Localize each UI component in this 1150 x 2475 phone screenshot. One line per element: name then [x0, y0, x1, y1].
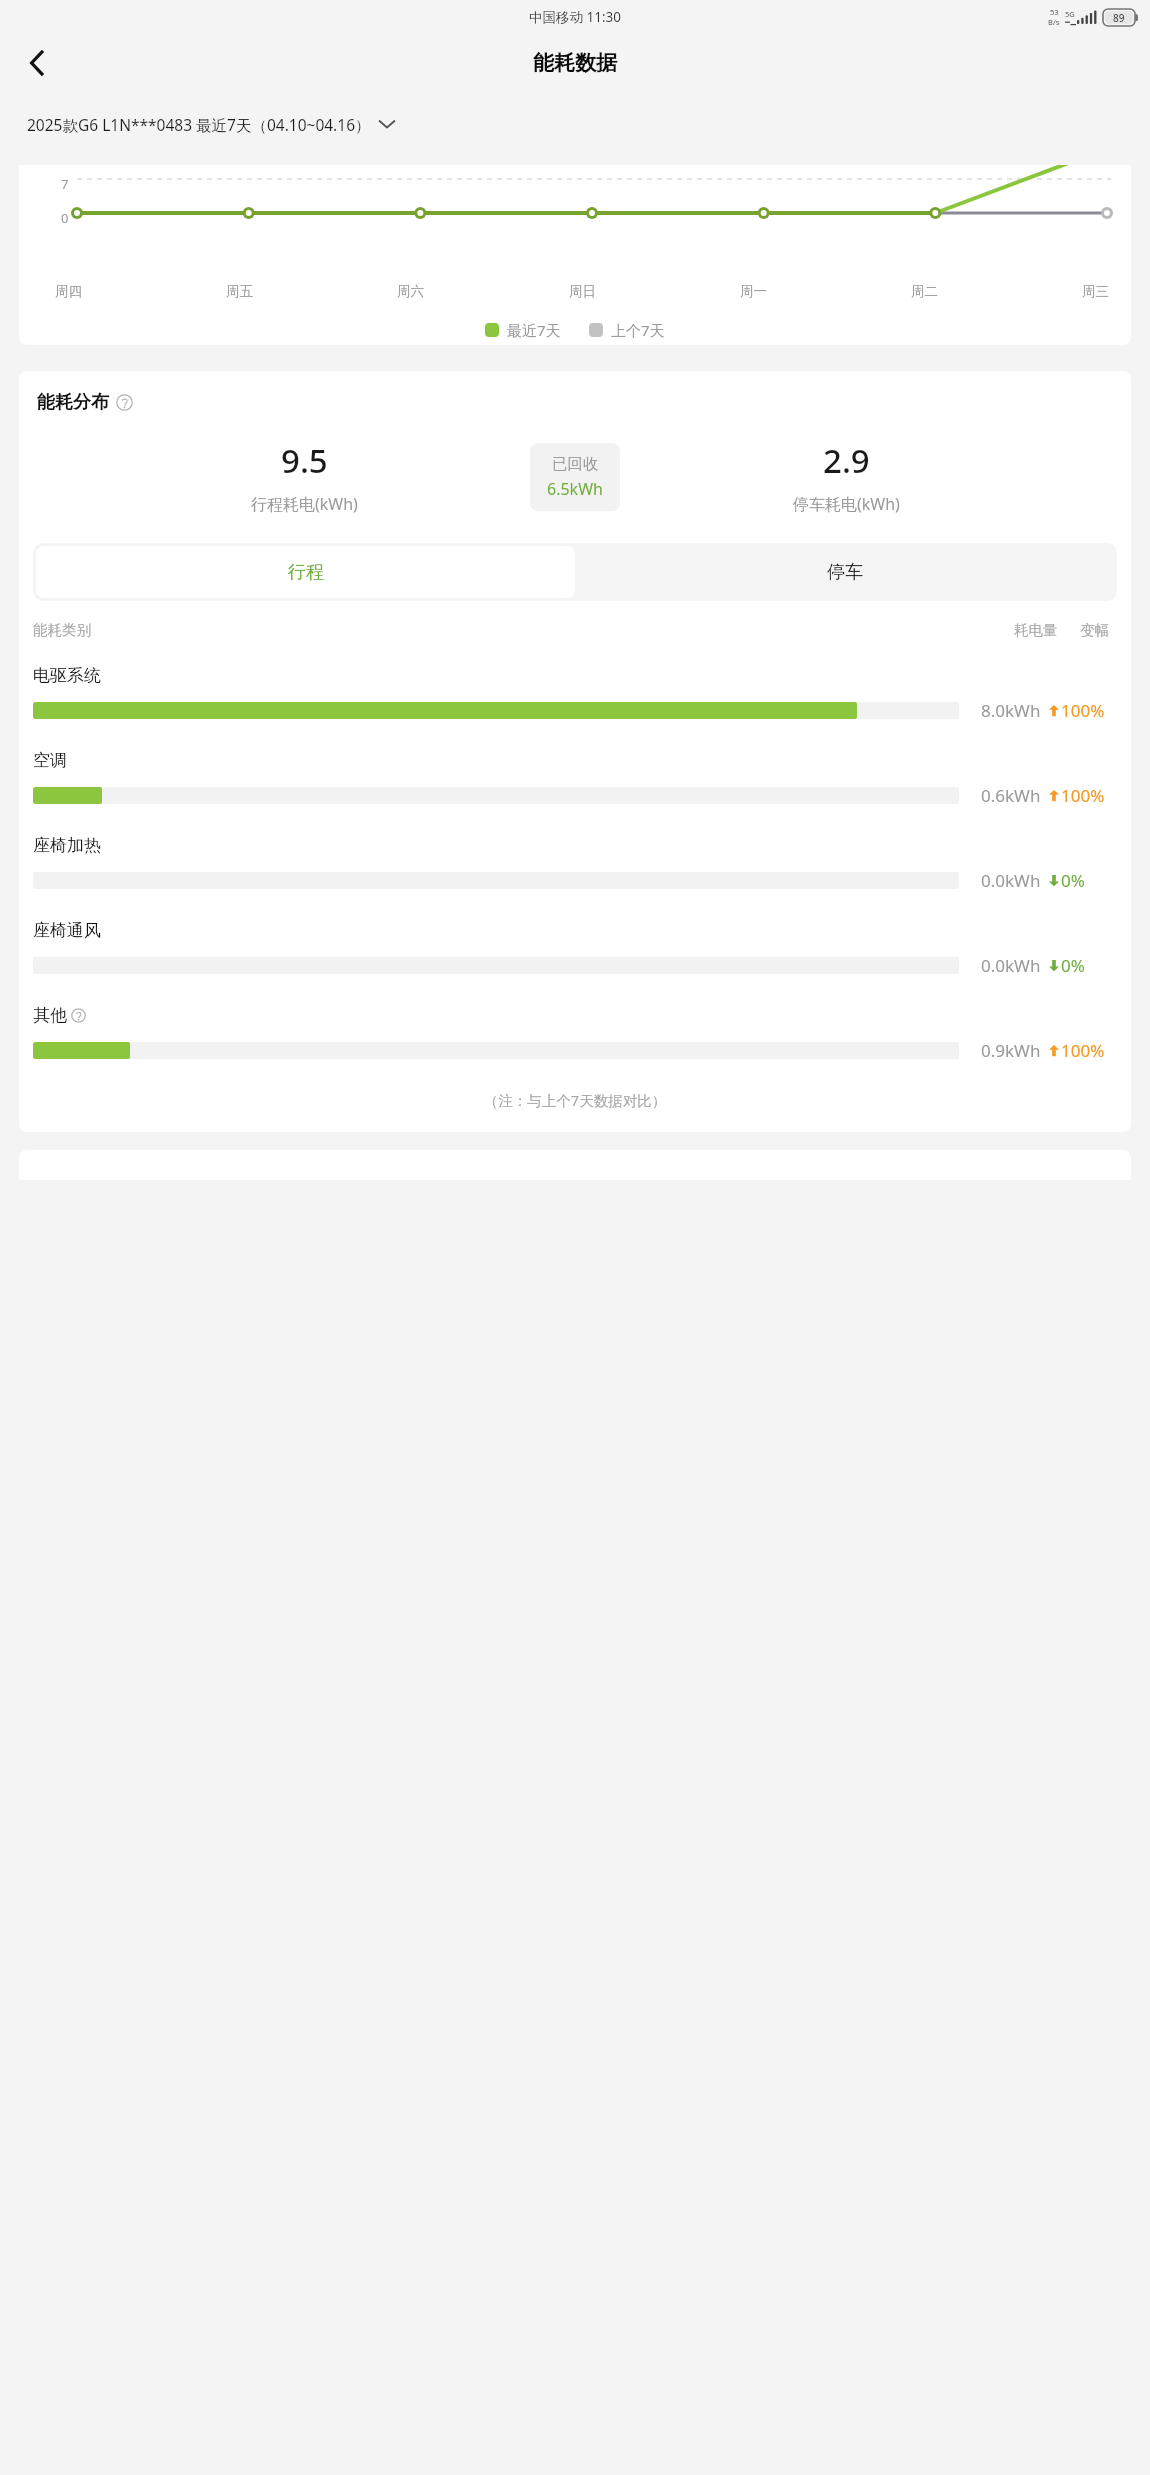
button[interactable]: 2025款G6 L1N***0483 最近7天（04.10~04.16） — [0, 93, 1150, 155]
staticText: 能耗数据 — [533, 50, 617, 76]
button[interactable]: 电驱系统 — [33, 651, 1117, 736]
staticText: 周四 — [55, 283, 82, 300]
staticText: 座椅加热 — [33, 835, 101, 856]
staticText: 行程 — [288, 561, 324, 584]
button[interactable]: 说明 — [116, 394, 133, 411]
staticText: 已回收 — [552, 454, 599, 474]
button[interactable]: 其他 — [33, 991, 1117, 1076]
staticText: 能耗类别 — [33, 621, 91, 639]
button[interactable]: 停车 — [575, 546, 1114, 598]
staticText: 0.0kWh — [981, 869, 1041, 892]
button[interactable]: Back — [14, 39, 62, 87]
staticText: 9.5 — [281, 438, 328, 483]
staticText: 2025款G6 L1N***0483 最近7天（04.10~04.16） — [27, 114, 371, 135]
staticText: 周一 — [740, 283, 767, 300]
staticText: 0 — [61, 209, 69, 227]
staticText: 空调 — [33, 750, 67, 771]
staticText: 最近7天 — [507, 320, 561, 340]
staticText: 89 — [1113, 11, 1125, 25]
staticText: 电驱系统 — [33, 665, 101, 686]
staticText: 0.9kWh — [981, 1039, 1041, 1062]
button[interactable]: 行程 — [36, 546, 575, 598]
staticText: 周六 — [397, 283, 424, 300]
staticText: 0% — [1061, 954, 1085, 977]
staticText: 座椅通风 — [33, 920, 101, 941]
staticText: （注：与上个7天数据对比） — [33, 1090, 1117, 1110]
button[interactable]: 座椅加热 — [33, 821, 1117, 906]
staticText: 2.9 — [823, 438, 870, 483]
staticText: 0% — [1061, 869, 1085, 892]
staticText: 6.5kWh — [547, 478, 603, 500]
staticText: 周三 — [1082, 283, 1109, 300]
staticText: 行程耗电(kWh) — [251, 493, 358, 515]
staticText: 中国移动 11:30 — [529, 8, 622, 26]
button[interactable]: 空调 — [33, 736, 1117, 821]
staticText: 8.0kWh — [981, 699, 1041, 722]
staticText: 0.0kWh — [981, 954, 1041, 977]
staticText: 5G — [1065, 9, 1075, 19]
staticText: B/s — [1048, 17, 1060, 27]
staticText: 周二 — [911, 283, 938, 300]
staticText: 100% — [1061, 784, 1105, 807]
staticText: 上个7天 — [611, 320, 665, 340]
staticText: 7 — [61, 175, 69, 193]
staticText: 53 — [1050, 7, 1059, 17]
staticText: 0.6kWh — [981, 784, 1041, 807]
button[interactable]: 座椅通风 — [33, 906, 1117, 991]
staticText: 停车耗电(kWh) — [793, 493, 900, 515]
staticText: 其他 — [33, 1005, 67, 1026]
staticText: 耗电量 — [1014, 621, 1058, 639]
staticText: 变幅 — [1080, 621, 1109, 639]
staticText: 停车 — [827, 561, 863, 584]
staticText: 100% — [1061, 1039, 1105, 1062]
staticText: 100% — [1061, 699, 1105, 722]
staticText: 能耗分布 — [37, 391, 109, 414]
staticText: 周五 — [226, 283, 253, 300]
button[interactable]: 说明 — [71, 1008, 86, 1023]
staticText: 周日 — [569, 283, 596, 300]
